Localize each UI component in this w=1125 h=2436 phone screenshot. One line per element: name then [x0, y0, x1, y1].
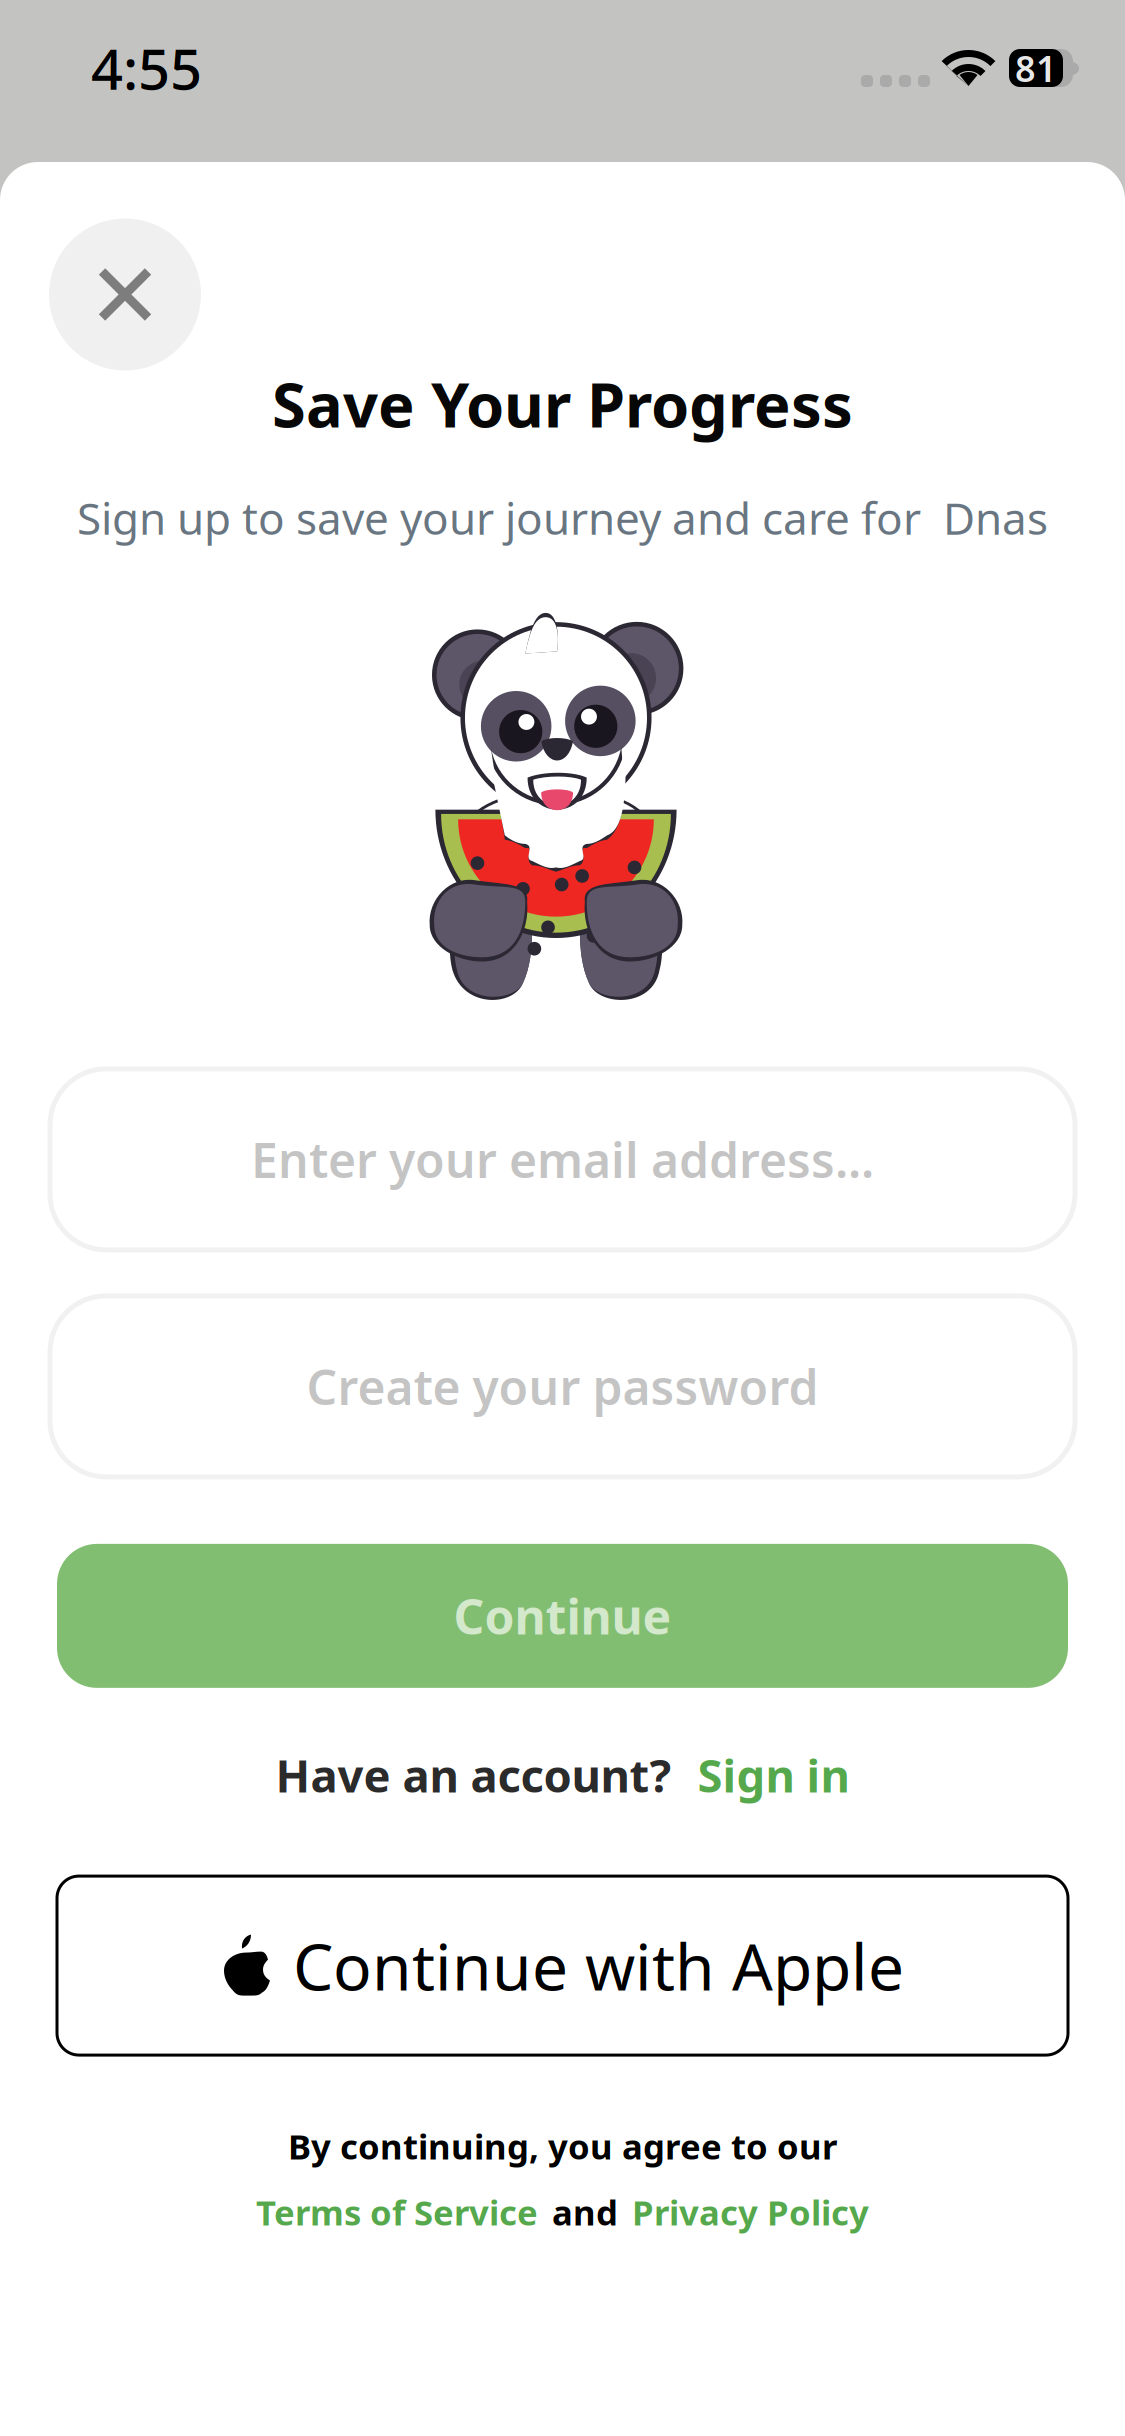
- button[interactable]: Create your password: [50, 1296, 1075, 1477]
- staticText: By continuing, you agree to our: [288, 2123, 837, 2169]
- staticText: Terms of Service: [256, 2189, 538, 2235]
- button[interactable]: Close: [49, 218, 201, 370]
- button[interactable]: Continue with Apple: [57, 1876, 1068, 2055]
- button[interactable]: Terms of Service: [256, 2189, 538, 2235]
- staticText: Enter your email address...: [251, 1127, 874, 1191]
- staticText: Save Your Progress: [272, 363, 853, 444]
- staticText: and: [552, 2189, 618, 2235]
- staticText: Continue with Apple: [293, 1923, 904, 2008]
- button[interactable]: Continue: [57, 1544, 1068, 1688]
- staticText: Continue: [453, 1584, 671, 1648]
- button[interactable]: Sign in: [697, 1745, 849, 1805]
- staticText: 81: [1015, 44, 1057, 92]
- staticText: 4:55: [91, 31, 202, 105]
- staticText: Have an account?: [275, 1745, 671, 1805]
- staticText: Sign up to save your journey and care fo…: [77, 488, 1048, 547]
- staticText: Sign in: [697, 1745, 849, 1805]
- staticText: Privacy Policy: [632, 2189, 869, 2235]
- button[interactable]: Privacy Policy: [632, 2189, 869, 2235]
- button[interactable]: Enter your email address...: [50, 1069, 1075, 1250]
- staticText: Create your password: [306, 1354, 818, 1418]
